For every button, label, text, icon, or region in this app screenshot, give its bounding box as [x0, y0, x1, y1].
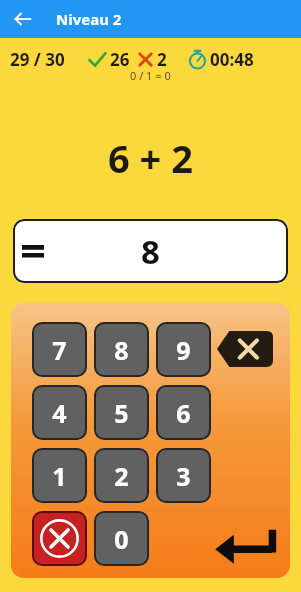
staticText: 2: [157, 48, 167, 71]
staticText: 2: [114, 459, 129, 493]
button[interactable]: Backspace: [217, 331, 273, 367]
button[interactable]: 0: [94, 511, 149, 566]
staticText: 1: [52, 459, 67, 493]
staticText: 5: [114, 396, 129, 430]
staticText: 4: [52, 396, 67, 430]
staticText: 8: [114, 333, 129, 367]
staticText: 6 + 2: [108, 132, 193, 184]
button[interactable]: 8: [94, 322, 149, 377]
staticText: 6: [176, 396, 191, 430]
button[interactable]: 4: [32, 385, 87, 440]
staticText: 8: [141, 229, 160, 274]
button[interactable]: 7: [32, 322, 87, 377]
button[interactable]: Back: [8, 4, 38, 34]
button[interactable]: Clear: [32, 511, 87, 566]
staticText: 9: [176, 333, 191, 367]
staticText: 0 / 1 = 0: [130, 68, 171, 83]
button[interactable]: 1: [32, 448, 87, 503]
button[interactable]: 9: [156, 322, 211, 377]
button[interactable]: 8: [13, 219, 288, 283]
staticText: 7: [52, 333, 67, 367]
button[interactable]: 3: [156, 448, 211, 503]
staticText: 29 / 30: [10, 48, 65, 71]
button[interactable]: 2: [94, 448, 149, 503]
button[interactable]: 6: [156, 385, 211, 440]
staticText: Niveau 2: [56, 9, 122, 29]
staticText: 26: [110, 48, 130, 71]
staticText: 00:48: [210, 48, 254, 71]
button[interactable]: Enter: [214, 521, 280, 565]
button[interactable]: 5: [94, 385, 149, 440]
staticText: 3: [176, 459, 191, 493]
staticText: 0: [114, 522, 129, 556]
